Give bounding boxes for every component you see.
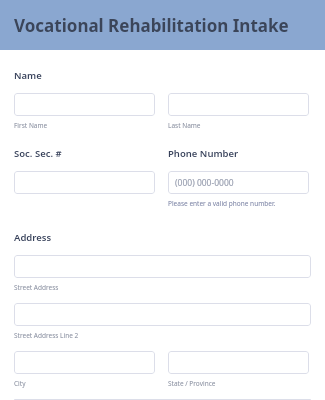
staticText: Vocational Rehabilitation Intake Form xyxy=(14,14,325,37)
staticText: City xyxy=(14,379,26,388)
staticText: Soc. Sec. # xyxy=(14,147,62,160)
button[interactable] xyxy=(14,303,311,326)
button[interactable] xyxy=(14,171,155,194)
staticText: Name xyxy=(14,69,42,82)
staticText: First Name xyxy=(14,121,48,130)
button[interactable] xyxy=(168,351,309,374)
staticText: Street Address xyxy=(14,283,59,292)
button[interactable]: (000) 000-0000 xyxy=(168,171,309,194)
button[interactable] xyxy=(14,93,155,116)
button[interactable] xyxy=(14,255,311,278)
button[interactable] xyxy=(168,93,309,116)
staticText: Address xyxy=(14,231,52,244)
staticText: State / Province xyxy=(168,379,216,388)
staticText: Please enter a valid phone number. xyxy=(168,199,276,208)
button[interactable] xyxy=(14,351,155,374)
staticText: Phone Number xyxy=(168,147,239,160)
staticText: (000) 000-0000 xyxy=(175,177,234,189)
staticText: Street Address Line 2 xyxy=(14,331,79,340)
staticText: Last Name xyxy=(168,121,201,130)
